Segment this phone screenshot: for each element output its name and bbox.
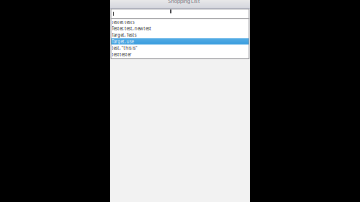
button[interactable]: testtester <box>111 51 249 58</box>
staticText: Target, Tests <box>112 32 137 38</box>
staticText: Tester, test, new test <box>112 25 152 31</box>
button[interactable]: tester, tests <box>111 19 249 25</box>
button[interactable]: test, "this is" <box>111 45 249 51</box>
staticText: Target, use <box>112 38 134 44</box>
button[interactable]: Target, use <box>111 38 249 45</box>
button[interactable]: New item <box>110 9 250 19</box>
staticText: test, "this is" <box>112 45 138 51</box>
staticText: tester, tests <box>112 19 135 25</box>
button[interactable]: Target, Tests <box>111 32 249 38</box>
staticText: testtester <box>112 51 132 57</box>
button[interactable]: Tester, test, new test <box>111 25 249 32</box>
staticText: Shopping List <box>168 0 200 5</box>
